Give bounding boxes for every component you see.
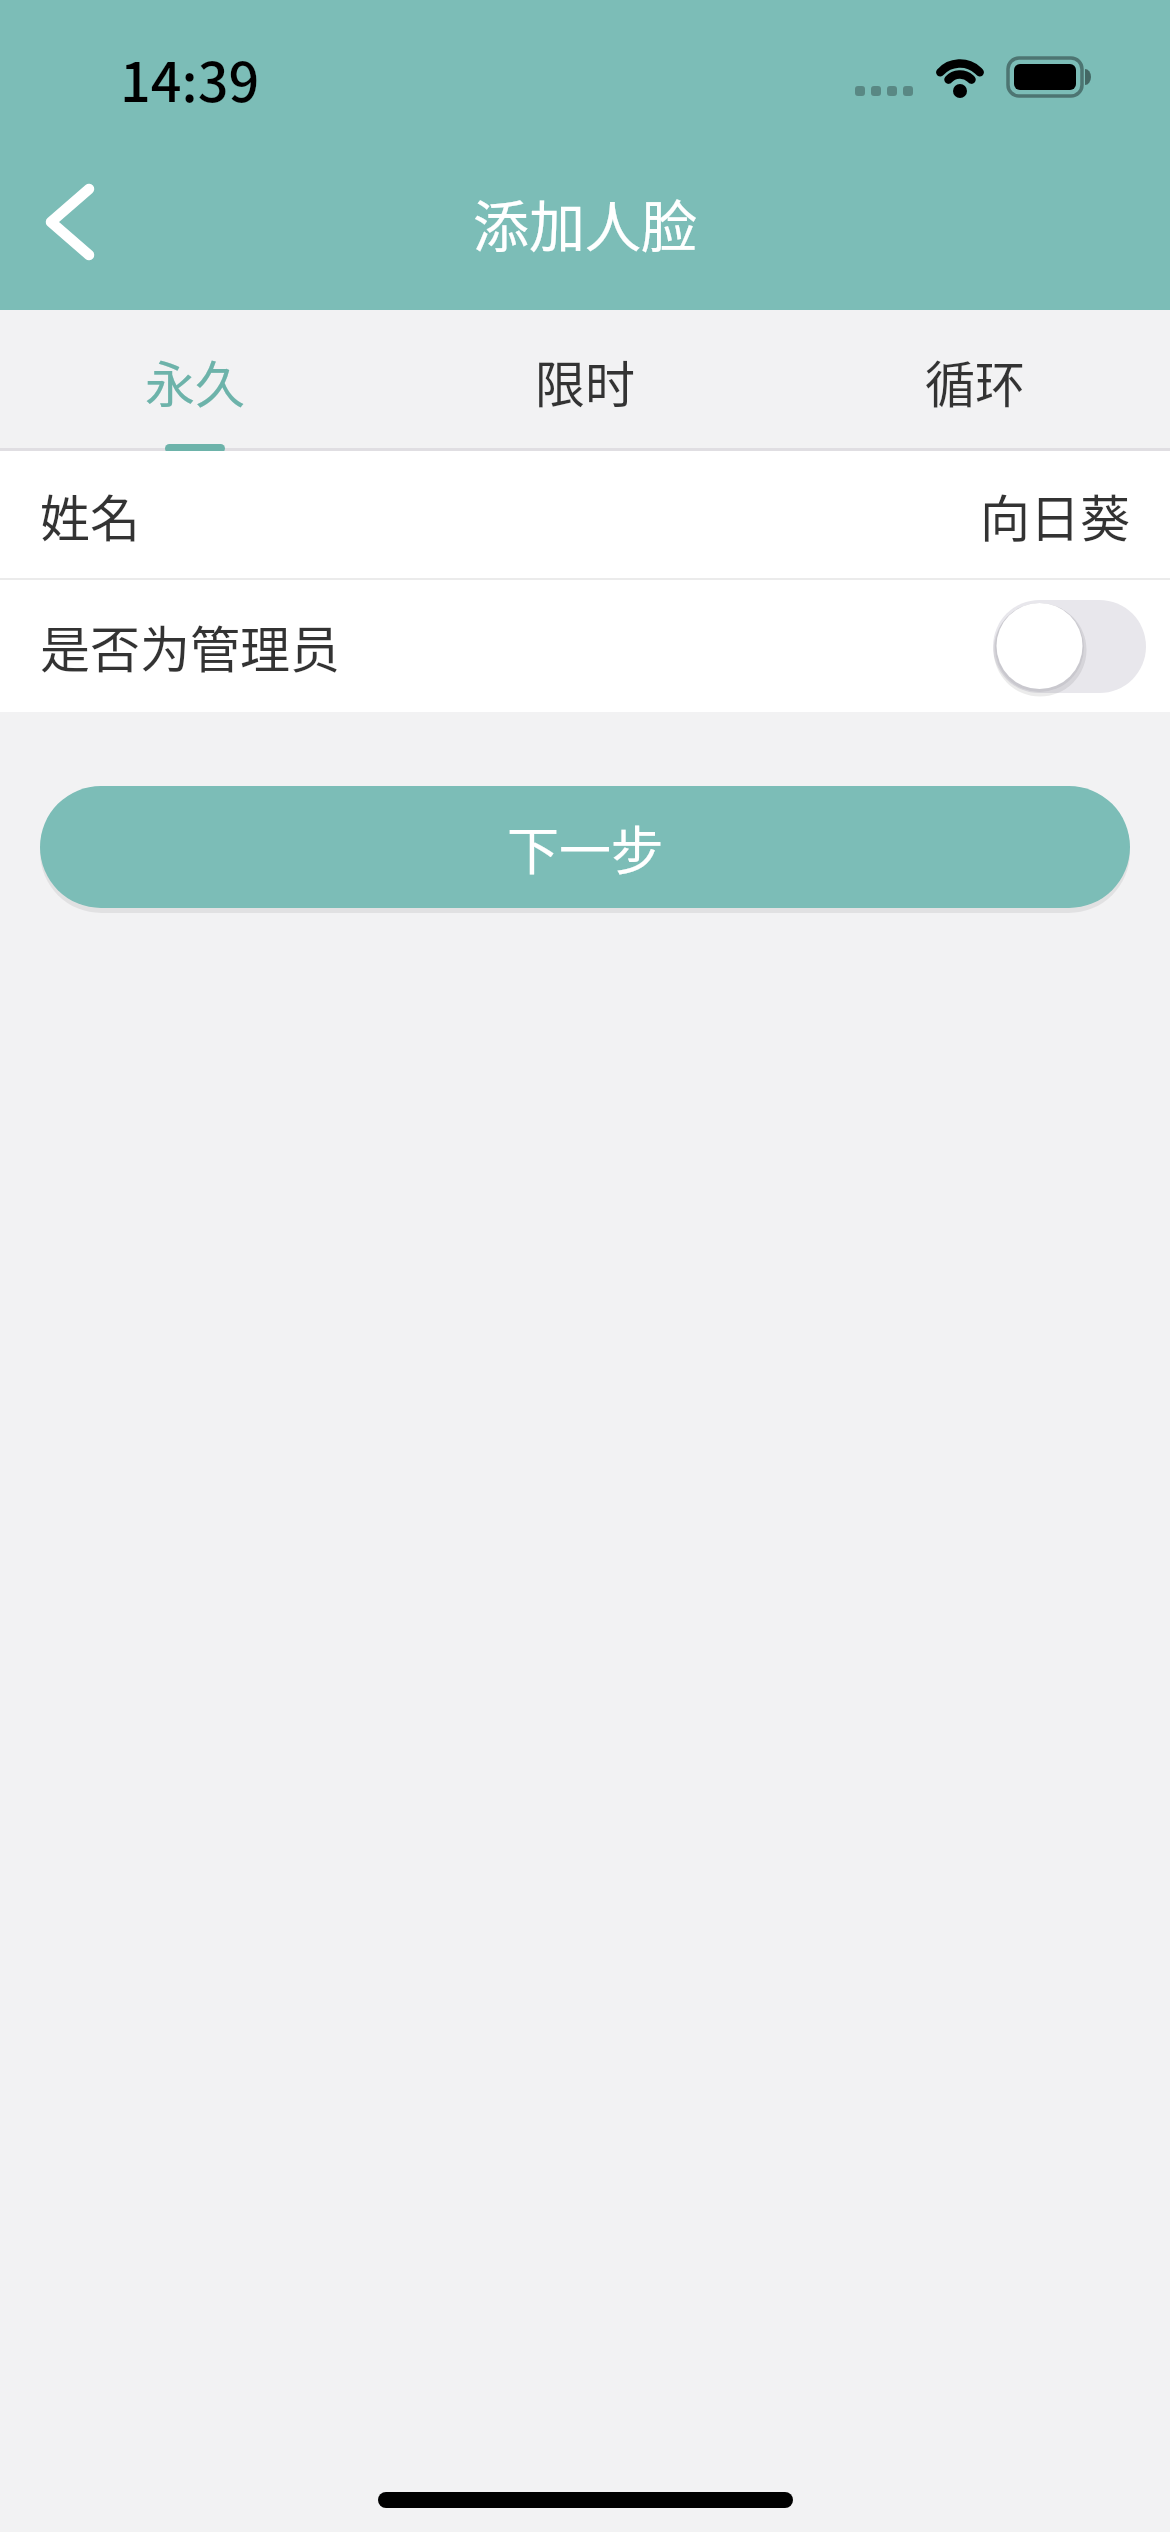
staticText: 永久 xyxy=(145,345,245,417)
staticText: 向日葵 xyxy=(980,479,1130,551)
staticText: 14:39 xyxy=(120,39,260,117)
staticText: 循环 xyxy=(925,345,1025,417)
button[interactable]: 永久 xyxy=(0,310,390,451)
staticText: 添加人脸 xyxy=(473,182,697,263)
staticText: 限时 xyxy=(535,345,635,417)
button[interactable]: 循环 xyxy=(780,310,1170,451)
button[interactable]: 限时 xyxy=(390,310,780,451)
button[interactable]: 姓名 xyxy=(0,451,1170,578)
staticText: 是否为管理员 xyxy=(40,610,340,682)
button[interactable] xyxy=(993,600,1146,693)
button[interactable]: 下一步 xyxy=(40,786,1130,908)
button[interactable]: 是否为管理员 xyxy=(0,580,1170,712)
staticText: 姓名 xyxy=(40,479,140,551)
button[interactable] xyxy=(10,160,130,284)
staticText: 下一步 xyxy=(507,810,664,885)
